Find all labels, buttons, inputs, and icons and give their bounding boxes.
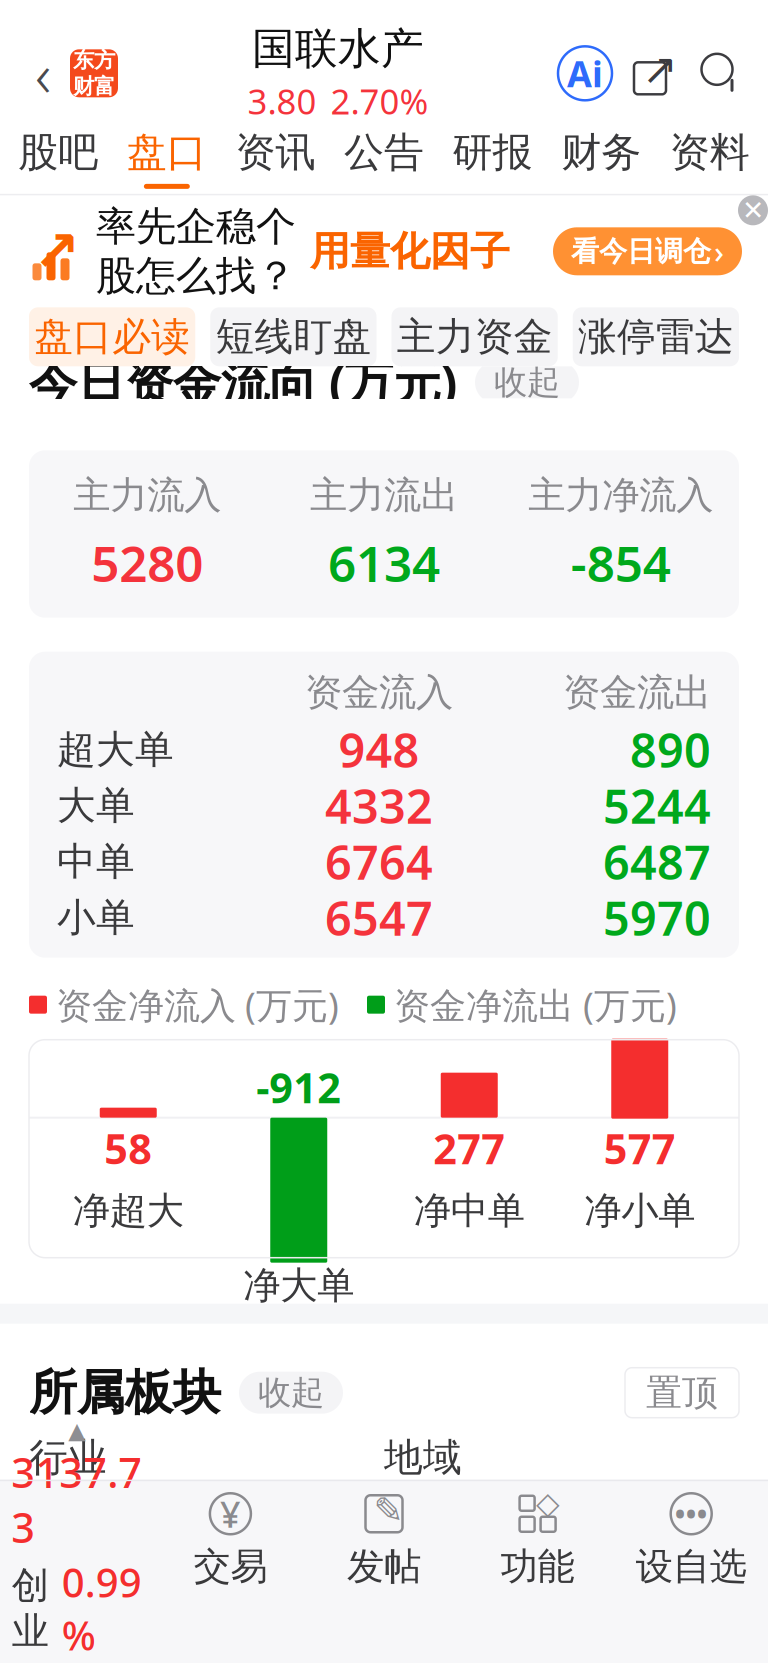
staticText: 交易 bbox=[193, 1544, 267, 1590]
staticText: 净中单 bbox=[414, 1188, 525, 1234]
staticText: 股吧 bbox=[18, 128, 98, 177]
staticText: 率先企稳个股怎么找？ bbox=[96, 202, 296, 300]
button[interactable]: 资讯 bbox=[221, 121, 330, 195]
staticText: 置顶 bbox=[646, 1371, 718, 1415]
staticText: 地域 bbox=[384, 1434, 462, 1481]
staticText: 收起 bbox=[258, 1372, 324, 1413]
button[interactable]: 股吧 bbox=[4, 121, 113, 195]
staticText: ✕ bbox=[742, 195, 764, 225]
button[interactable]: 短线盯盘 bbox=[210, 307, 376, 366]
staticText: ‹ bbox=[35, 33, 51, 114]
staticText: 国联水产 bbox=[252, 23, 424, 75]
button[interactable]: 财务 bbox=[547, 121, 655, 195]
staticText: 主力资金 bbox=[397, 313, 553, 361]
button[interactable]: 资料 bbox=[655, 121, 764, 195]
staticText: 功能 bbox=[501, 1544, 575, 1590]
staticText: 看今日调仓 bbox=[571, 234, 711, 268]
button[interactable]: 涨停雷达 bbox=[573, 307, 739, 366]
button[interactable]: 盘口 bbox=[113, 121, 221, 195]
staticText: 盘口 bbox=[127, 128, 207, 177]
button[interactable]: 交易 bbox=[154, 1480, 307, 1600]
staticText: 大单 bbox=[57, 782, 135, 829]
staticText: 收起 bbox=[494, 362, 560, 403]
staticText: 3.80 bbox=[247, 78, 316, 124]
button[interactable]: Share bbox=[630, 48, 680, 98]
staticText: 主力流出 bbox=[310, 472, 458, 518]
staticText: 6487 bbox=[603, 831, 711, 893]
staticText: 6547 bbox=[325, 887, 433, 949]
staticText: 948 bbox=[338, 719, 419, 781]
staticText: 6134 bbox=[328, 530, 440, 596]
staticText: ✎ bbox=[373, 1490, 403, 1531]
staticText: 277 bbox=[433, 1121, 505, 1176]
staticText: 0.99% bbox=[62, 1555, 142, 1661]
staticText: ▲ bbox=[68, 1418, 85, 1443]
staticText: 2.70% bbox=[330, 78, 428, 124]
staticText: -854 bbox=[571, 530, 671, 596]
button[interactable]: AI bbox=[558, 46, 612, 100]
staticText: 资金净流出 (万元) bbox=[394, 981, 677, 1029]
staticText: 设自选 bbox=[636, 1544, 747, 1590]
button[interactable]: 功能 bbox=[461, 1480, 614, 1600]
staticText: 研报 bbox=[453, 128, 533, 177]
staticText: 5970 bbox=[603, 887, 711, 949]
button[interactable]: 公告 bbox=[330, 121, 438, 195]
staticText: ↗ bbox=[642, 45, 678, 93]
staticText: 净大单 bbox=[243, 1263, 354, 1309]
staticText: 资金流出 bbox=[563, 670, 711, 716]
staticText: 58 bbox=[104, 1121, 152, 1176]
staticText: ••• bbox=[675, 1495, 708, 1532]
button[interactable]: 盘口必读 bbox=[29, 307, 195, 366]
button[interactable]: 置顶 bbox=[625, 1368, 739, 1418]
staticText: ¥ bbox=[220, 1490, 241, 1538]
button[interactable]: 研报 bbox=[438, 121, 547, 195]
staticText: ↗ bbox=[33, 219, 80, 283]
staticText: 发帖 bbox=[347, 1544, 421, 1590]
button[interactable]: East Money bbox=[70, 49, 118, 97]
staticText: 资讯 bbox=[235, 128, 315, 177]
staticText: 5280 bbox=[91, 530, 203, 596]
staticText: ◇ bbox=[536, 1486, 560, 1521]
staticText: 超大单 bbox=[57, 726, 174, 773]
button[interactable]: Back bbox=[22, 41, 64, 105]
staticText: 行业 bbox=[29, 1434, 107, 1481]
staticText: 涨停雷达 bbox=[578, 313, 734, 361]
staticText: 创业 bbox=[12, 1563, 49, 1654]
staticText: 中单 bbox=[57, 838, 135, 885]
staticText: 5244 bbox=[603, 775, 711, 837]
staticText: 用量化因子 bbox=[310, 227, 510, 276]
button[interactable]: Search bbox=[696, 48, 746, 98]
staticText: 3137.73 bbox=[11, 1444, 142, 1554]
staticText: 资金流入 bbox=[305, 670, 453, 716]
staticText: 财务 bbox=[561, 128, 641, 177]
staticText: 今日资金流向 (万元) bbox=[29, 350, 457, 414]
staticText: 净超大 bbox=[73, 1188, 184, 1234]
button[interactable]: 主力资金 bbox=[391, 307, 558, 366]
staticText: 资金净流入 (万元) bbox=[56, 981, 339, 1029]
staticText: 小单 bbox=[57, 894, 135, 941]
staticText: 资料 bbox=[670, 128, 750, 177]
staticText: 所属板块 bbox=[29, 1363, 221, 1422]
staticText: 主力流入 bbox=[73, 472, 221, 518]
staticText: 6764 bbox=[325, 831, 433, 893]
staticText: 890 bbox=[630, 719, 711, 781]
staticText: › bbox=[714, 231, 724, 272]
button[interactable]: 创业板 3137.73 up 0.99% bbox=[0, 1480, 154, 1600]
staticText: Ai bbox=[567, 49, 603, 97]
staticText: 577 bbox=[604, 1121, 676, 1176]
button[interactable]: 设自选 bbox=[614, 1480, 768, 1600]
staticText: 盘口必读 bbox=[34, 313, 190, 361]
button[interactable]: 收起 bbox=[239, 1372, 343, 1414]
staticText: -912 bbox=[256, 1060, 341, 1115]
staticText: 短线盯盘 bbox=[215, 313, 371, 361]
staticText: 净小单 bbox=[584, 1188, 695, 1234]
staticText: 公告 bbox=[344, 128, 424, 177]
staticText: 4332 bbox=[325, 775, 433, 837]
button[interactable]: ↗ bbox=[0, 195, 768, 307]
staticText: 主力净流入 bbox=[528, 472, 713, 518]
staticText: 东方 bbox=[73, 47, 115, 73]
button[interactable]: 发帖 bbox=[307, 1480, 461, 1600]
staticText: 财富 bbox=[73, 73, 115, 99]
